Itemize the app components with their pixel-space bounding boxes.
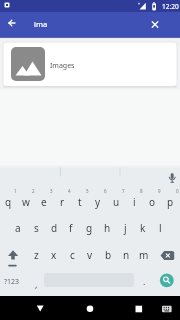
button[interactable]: n	[114, 246, 138, 264]
staticText: ,	[35, 278, 38, 290]
staticText: f	[69, 221, 73, 235]
button[interactable]: f	[59, 219, 83, 237]
staticText: i	[133, 195, 136, 209]
staticText: 9	[158, 188, 161, 194]
button[interactable]: ?123	[0, 273, 24, 291]
button[interactable]: z	[24, 246, 48, 264]
staticText: m	[139, 248, 149, 262]
button[interactable]: j	[113, 219, 137, 237]
button[interactable]: e	[32, 193, 56, 211]
staticText: p	[167, 195, 174, 209]
button[interactable]: l	[148, 219, 172, 237]
button[interactable]	[3, 42, 177, 86]
button[interactable]: o	[140, 193, 164, 211]
button[interactable]	[146, 15, 164, 33]
button[interactable]	[164, 170, 180, 186]
staticText: 0	[176, 188, 179, 194]
staticText: 5	[86, 188, 89, 194]
staticText: c	[70, 248, 75, 262]
staticText: w	[22, 195, 30, 209]
staticText: g	[86, 221, 93, 235]
staticText: j	[124, 221, 127, 235]
button[interactable]: x	[42, 246, 66, 264]
staticText: n	[123, 248, 130, 262]
button[interactable]: w	[14, 193, 38, 211]
staticText: 12:20	[162, 2, 179, 11]
staticText: 6	[104, 188, 107, 194]
button[interactable]: q	[0, 193, 20, 211]
button[interactable]	[26, 296, 54, 320]
staticText: Images	[50, 61, 75, 71]
staticText: ?123	[4, 277, 20, 287]
staticText: d	[51, 221, 58, 235]
button[interactable]: g	[77, 219, 101, 237]
button[interactable]	[76, 296, 104, 320]
staticText: ima	[34, 19, 48, 29]
staticText: o	[149, 195, 156, 209]
button[interactable]: t	[68, 193, 92, 211]
staticText: z	[34, 248, 39, 262]
button[interactable]: m	[132, 246, 156, 264]
staticText: k	[140, 221, 146, 235]
button[interactable]	[4, 15, 22, 33]
staticText: v	[87, 248, 93, 262]
staticText: 8	[140, 188, 143, 194]
button[interactable]: u	[104, 193, 128, 211]
staticText: a	[15, 221, 21, 235]
staticText: r	[60, 195, 65, 209]
button[interactable]: ,	[24, 275, 48, 293]
button[interactable]: y	[86, 193, 110, 211]
button[interactable]: d	[42, 219, 66, 237]
button[interactable]	[125, 296, 153, 320]
button[interactable]: .	[132, 272, 156, 290]
staticText: h	[104, 221, 111, 235]
staticText: q	[5, 195, 12, 209]
button[interactable]: k	[131, 219, 155, 237]
button[interactable]: b	[96, 246, 120, 264]
button[interactable]: i	[122, 193, 146, 211]
staticText: 1	[14, 188, 17, 194]
button[interactable]: h	[95, 219, 119, 237]
staticText: 2	[32, 188, 35, 194]
button[interactable]: v	[78, 246, 102, 264]
staticText: .	[143, 275, 146, 287]
staticText: l	[159, 221, 162, 235]
staticText: y	[95, 195, 101, 209]
staticText: e	[41, 195, 47, 209]
staticText: 3	[50, 188, 53, 194]
staticText: t	[78, 195, 82, 209]
staticText: x	[51, 248, 57, 262]
staticText: u	[113, 195, 120, 209]
staticText: 7	[122, 188, 125, 194]
button[interactable]: p	[158, 193, 180, 211]
button[interactable]: s	[24, 219, 48, 237]
button[interactable]: a	[6, 219, 30, 237]
staticText: b	[105, 248, 112, 262]
staticText: s	[34, 221, 39, 235]
button[interactable]	[159, 273, 174, 288]
button[interactable]: c	[60, 246, 84, 264]
staticText: 4	[68, 188, 71, 194]
button[interactable]: r	[50, 193, 74, 211]
